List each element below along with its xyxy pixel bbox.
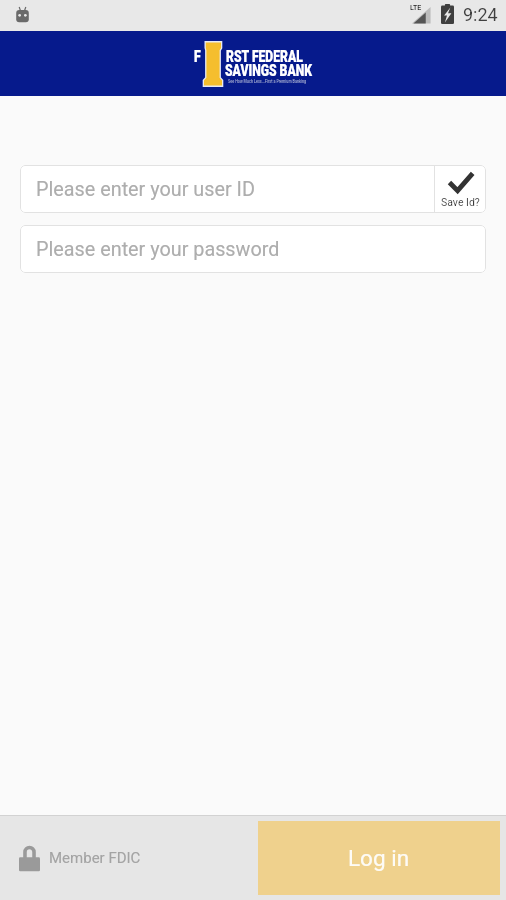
button[interactable]: Save Id xyxy=(435,165,486,213)
staticText: F xyxy=(194,46,201,66)
staticText: Log in xyxy=(348,845,410,871)
staticText: Please enter your user ID xyxy=(36,178,255,201)
staticText: SAVINGS BANK xyxy=(225,60,312,80)
staticText: Please enter your password xyxy=(36,238,280,261)
button[interactable]: Member FDIC xyxy=(19,844,141,872)
staticText: Member FDIC xyxy=(49,849,141,867)
staticText: RST FEDERAL xyxy=(226,46,303,66)
staticText: Save Id? xyxy=(441,196,480,208)
button[interactable]: Log in xyxy=(258,821,500,895)
staticText: See How Much Less...First a Premium Bank… xyxy=(228,77,307,84)
button[interactable]: Please enter your password xyxy=(20,225,486,273)
staticText: 9:24 xyxy=(463,4,498,25)
staticText: LTE xyxy=(410,4,422,12)
button[interactable]: Please enter your user ID xyxy=(20,165,434,213)
